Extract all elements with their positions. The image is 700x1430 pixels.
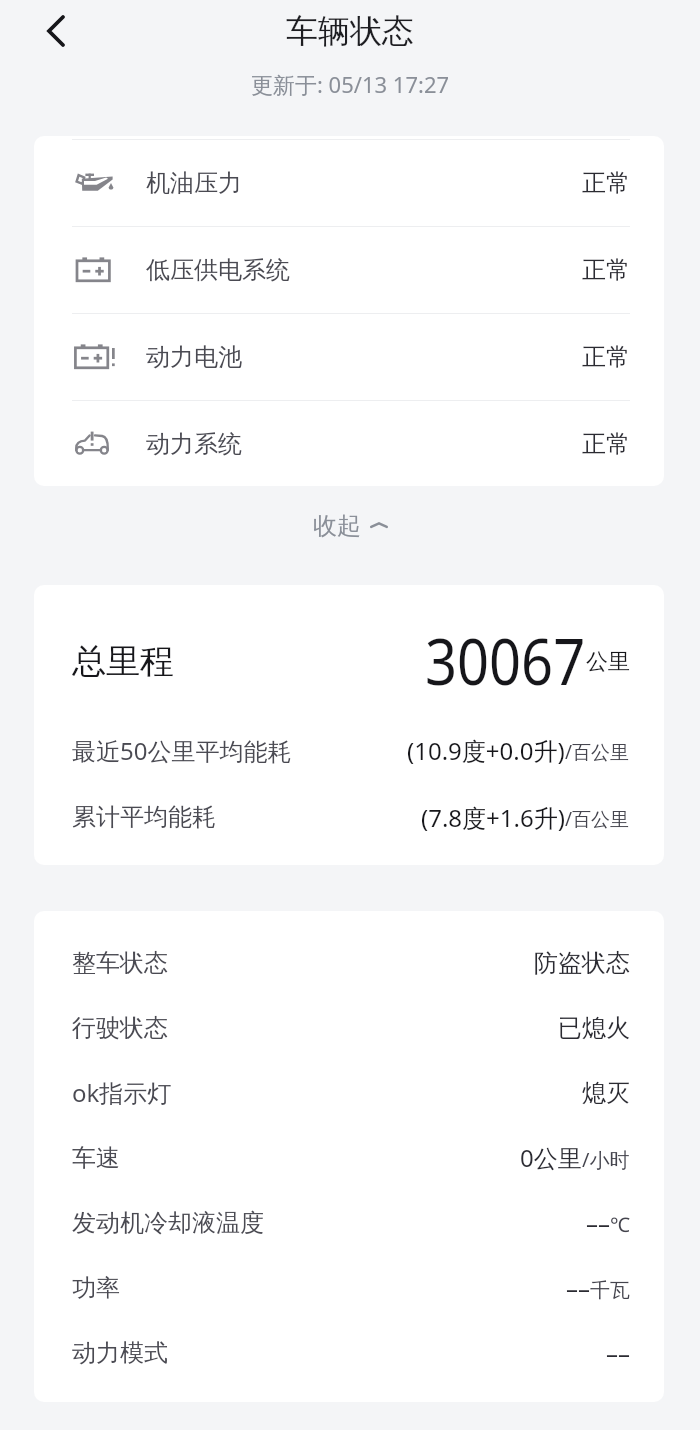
staticText: 已熄火 [558, 1013, 630, 1043]
staticText: 动力模式 [72, 1338, 168, 1368]
staticText: 机油压力 [146, 168, 242, 198]
button[interactable]: 收起 [295, 501, 406, 551]
staticText: 行驶状态 [72, 1013, 168, 1043]
staticText: 功率 [72, 1273, 120, 1303]
button[interactable]: 机油压力 [34, 140, 664, 226]
staticText: 防盗状态 [534, 948, 630, 978]
staticText: (7.8度+1.6升) [421, 801, 565, 833]
staticText: (10.9度+0.0升) [407, 734, 565, 766]
staticText: /百公里 [565, 806, 630, 832]
staticText: 公里 [586, 648, 630, 676]
staticText: 正常 [582, 429, 630, 459]
staticText: ok指示灯 [72, 1076, 172, 1109]
staticText: 车辆状态 [286, 11, 414, 51]
staticText: –– [566, 1271, 590, 1304]
staticText: /小时 [582, 1146, 630, 1173]
staticText: 整车状态 [72, 948, 168, 978]
staticText: 车速 [72, 1143, 120, 1173]
staticText: 动力电池 [146, 342, 242, 372]
staticText: 收起 [313, 511, 361, 541]
button[interactable]: Back [24, 0, 86, 62]
button[interactable]: 动力电池 [34, 314, 664, 400]
staticText: 低压供电系统 [146, 255, 290, 285]
staticText: 发动机冷却液温度 [72, 1208, 264, 1238]
staticText: 更新于: 05/13 17:27 [251, 69, 450, 99]
staticText: 正常 [582, 342, 630, 372]
staticText: 最近50公里平均能耗 [72, 734, 292, 766]
staticText: 熄灭 [582, 1078, 630, 1108]
staticText: /百公里 [565, 739, 630, 765]
staticText: ℃ [610, 1211, 630, 1238]
staticText: 动力系统 [146, 429, 242, 459]
staticText: –– [586, 1206, 610, 1239]
staticText: 总里程 [72, 640, 174, 683]
staticText: 正常 [582, 255, 630, 285]
staticText: 30067 [425, 617, 586, 704]
button[interactable]: 低压供电系统 [34, 227, 664, 313]
staticText: 0公里 [520, 1141, 582, 1174]
staticText: 千瓦 [590, 1278, 630, 1303]
staticText: 累计平均能耗 [72, 802, 216, 832]
button[interactable]: 动力系统 [34, 401, 664, 486]
staticText: 正常 [582, 168, 630, 198]
staticText: –– [606, 1336, 630, 1369]
